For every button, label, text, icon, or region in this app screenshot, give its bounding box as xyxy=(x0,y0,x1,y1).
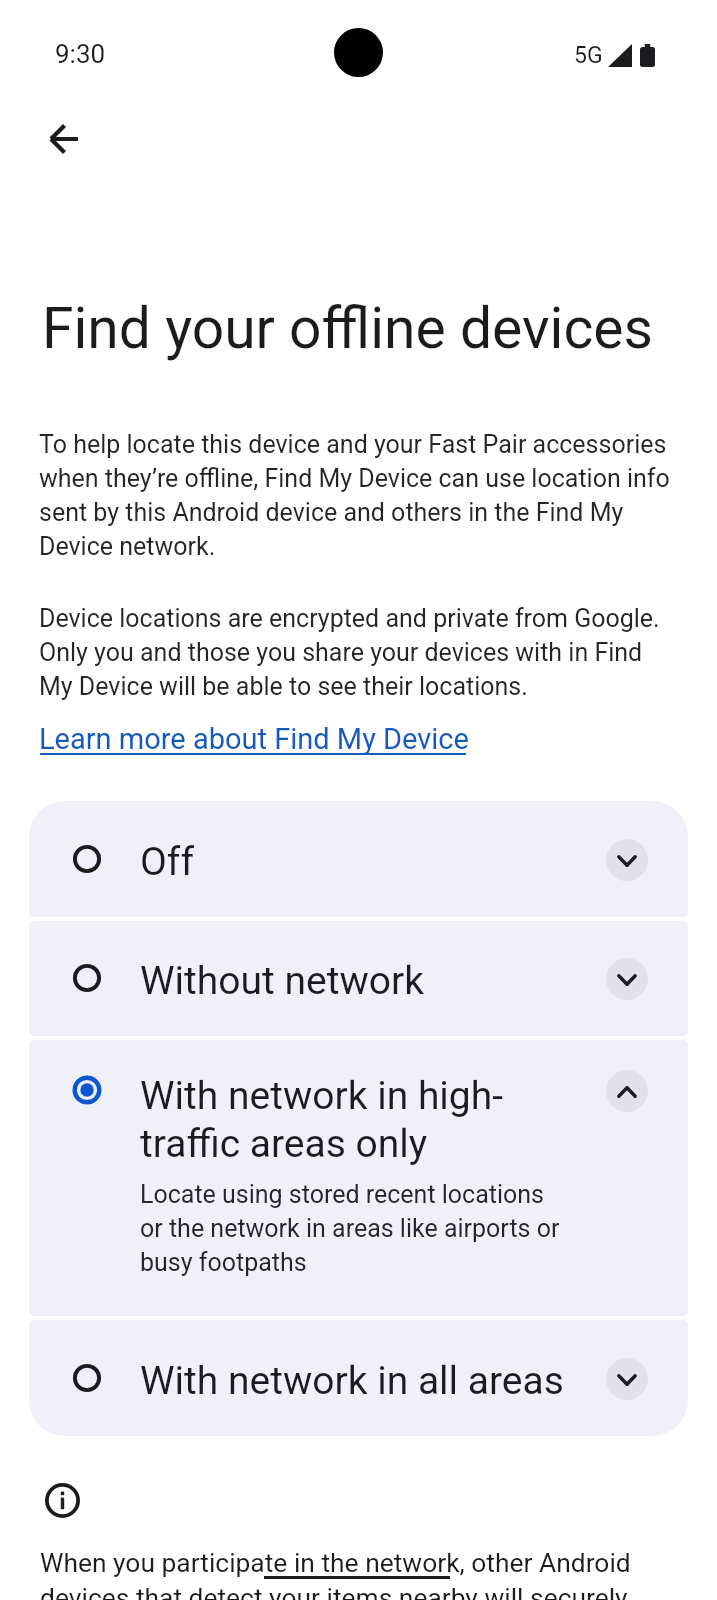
button[interactable]: Expand xyxy=(606,958,648,1000)
staticText: Locate using stored recent locations or … xyxy=(140,1180,562,1277)
staticText: With network in all areas xyxy=(140,1358,585,1404)
button[interactable]: Off xyxy=(29,801,688,917)
staticText: To help locate this device and your Fast… xyxy=(39,430,675,561)
staticText: Device locations are encrypted and priva… xyxy=(39,604,675,701)
button[interactable]: Back xyxy=(25,101,101,177)
staticText: Find your offline devices xyxy=(42,295,653,362)
button[interactable]: Learn more about Find My Device xyxy=(39,715,471,765)
button[interactable]: Collapse xyxy=(606,1070,648,1112)
button[interactable]: With network in all areas xyxy=(29,1320,688,1436)
button[interactable]: Without network xyxy=(29,921,688,1036)
button[interactable]: Expand xyxy=(606,839,648,881)
button[interactable]: Expand xyxy=(606,1358,648,1400)
staticText: 5G xyxy=(574,42,603,69)
staticText: 9:30 xyxy=(55,39,106,69)
button[interactable]: With network in high-traffic areas only xyxy=(29,1040,688,1316)
staticText: When you participate in the network, oth… xyxy=(40,1548,680,1600)
staticText: Learn more about Find My Device xyxy=(39,722,469,756)
staticText: With network in high-traffic areas only xyxy=(140,1073,585,1167)
staticText: Without network xyxy=(140,958,585,1004)
staticText: Off xyxy=(140,839,585,885)
